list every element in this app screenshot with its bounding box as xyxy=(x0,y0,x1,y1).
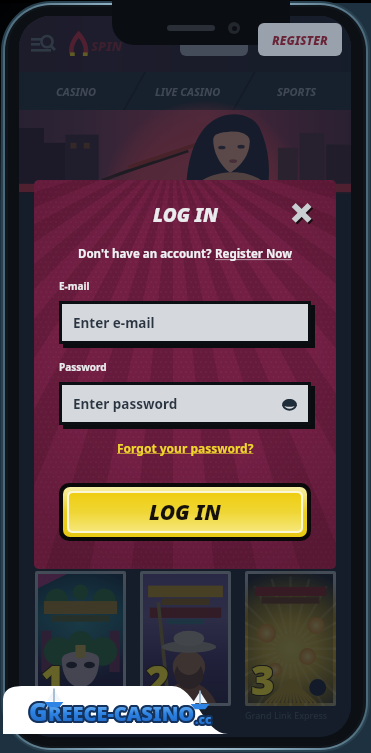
staticText: 1 xyxy=(42,651,66,705)
staticText: 1 xyxy=(42,653,66,706)
staticText: REECE-CASINO xyxy=(50,700,197,727)
staticText: REECE-CASINO xyxy=(48,698,195,725)
staticText: .cc xyxy=(197,711,214,727)
staticText: G xyxy=(30,693,49,727)
staticText: 1 xyxy=(41,651,65,705)
staticText: 3 xyxy=(251,651,275,705)
staticText: G xyxy=(28,692,47,726)
staticText: 3 xyxy=(252,653,276,706)
staticText: 2 xyxy=(145,651,169,705)
staticText: .cc xyxy=(197,712,214,728)
staticText: 2 xyxy=(147,652,171,706)
staticText: 1 xyxy=(41,652,65,706)
button[interactable]: Enter e-mail xyxy=(62,304,308,341)
staticText: .cc xyxy=(195,710,212,726)
staticText: .cc xyxy=(196,712,213,728)
staticText: G xyxy=(28,694,47,728)
staticText: .cc xyxy=(196,709,213,725)
button[interactable]: 2 xyxy=(143,574,228,703)
staticText: .cc xyxy=(194,711,211,727)
staticText: REECE-CASINO xyxy=(48,699,195,726)
staticText: .cc xyxy=(195,713,212,729)
button[interactable]: CASINO xyxy=(19,72,133,110)
staticText: SPORTS xyxy=(277,84,317,99)
staticText: .cc xyxy=(195,709,212,725)
staticText: LOG IN xyxy=(149,498,221,527)
staticText: CASINO xyxy=(56,84,97,99)
staticText: LIVE CASINO xyxy=(155,84,221,99)
button[interactable]: LOG IN xyxy=(69,493,301,531)
staticText: G xyxy=(29,694,48,728)
button[interactable]: Search menu xyxy=(28,27,62,61)
staticText: G xyxy=(31,694,50,728)
staticText: REECE-CASINO xyxy=(48,700,195,727)
button[interactable]: Enter password xyxy=(62,385,308,422)
staticText: .cc xyxy=(195,711,212,727)
staticText: G xyxy=(29,696,48,730)
staticText: 3 xyxy=(252,651,276,705)
staticText: REECE-CASINO xyxy=(49,698,196,725)
button[interactable]: Show password xyxy=(281,395,298,412)
staticText: 1 xyxy=(40,651,64,705)
staticText: 3 xyxy=(252,652,276,706)
staticText: REECE-CASINO xyxy=(49,701,196,728)
staticText: REECE-CASINO xyxy=(49,700,196,727)
button[interactable]: Register Now xyxy=(215,246,293,262)
staticText: 2 xyxy=(145,653,169,706)
staticText: 2 xyxy=(146,651,170,705)
staticText: 3 xyxy=(250,651,274,705)
staticText: 3 xyxy=(251,652,275,706)
staticText: .cc xyxy=(194,713,211,729)
staticText: 2 xyxy=(146,652,170,706)
staticText: .cc xyxy=(196,711,213,727)
staticText: G xyxy=(28,696,47,730)
staticText: REECE-CASINO xyxy=(47,699,194,726)
staticText: G xyxy=(27,695,46,729)
staticText: 2 xyxy=(147,651,171,705)
staticText: Joker Jackpot xyxy=(35,709,92,721)
staticText: 3 xyxy=(250,653,274,706)
staticText: 3 xyxy=(250,652,274,706)
button[interactable]: Close xyxy=(289,200,315,226)
staticText: REECE-CASINO xyxy=(46,699,193,726)
button[interactable]: LOG IN xyxy=(180,23,248,56)
button[interactable]: Forgot your password? xyxy=(117,440,254,456)
staticText: SPIN xyxy=(91,37,123,55)
staticText: 3 xyxy=(251,653,275,706)
staticText: REECE-CASINO xyxy=(50,701,197,728)
staticText: .cc xyxy=(193,712,210,728)
staticText: G xyxy=(28,695,47,729)
staticText: REECE-CASINO xyxy=(48,700,195,727)
staticText: Enter password xyxy=(73,395,178,413)
staticText: G xyxy=(31,693,50,727)
staticText: G xyxy=(30,695,49,729)
staticText: E-mail xyxy=(59,279,90,293)
staticText: .cc xyxy=(197,710,214,726)
staticText: G xyxy=(29,693,48,727)
staticText: 1 xyxy=(41,653,65,706)
staticText: G xyxy=(29,692,48,726)
staticText: G xyxy=(27,693,46,727)
staticText: G xyxy=(28,693,47,727)
staticText: REECE-CASINO xyxy=(47,700,194,727)
staticText: 1 xyxy=(42,652,66,706)
staticText: .cc xyxy=(195,711,212,727)
staticText: .cc xyxy=(193,711,210,727)
staticText: Big Bass Vegas xyxy=(140,709,204,721)
button[interactable]: 3 xyxy=(248,574,333,703)
staticText: REECE-CASINO xyxy=(47,702,194,729)
staticText: REECE-CASINO xyxy=(49,699,196,726)
staticText: .cc xyxy=(196,710,213,726)
staticText: REECE-CASINO xyxy=(48,702,195,729)
staticText: REECE-CASINO xyxy=(48,701,195,728)
button[interactable] xyxy=(19,110,351,192)
staticText: G xyxy=(30,694,49,728)
button[interactable]: REGISTER xyxy=(258,23,342,56)
staticText: Don't have an account? xyxy=(78,246,215,262)
button[interactable]: LIVE CASINO xyxy=(133,72,243,110)
staticText: .cc xyxy=(196,713,213,729)
staticText: G xyxy=(27,694,46,728)
button[interactable]: SPORTS xyxy=(243,72,351,110)
staticText: LOG IN xyxy=(193,32,235,48)
button[interactable]: 1 xyxy=(38,574,123,703)
